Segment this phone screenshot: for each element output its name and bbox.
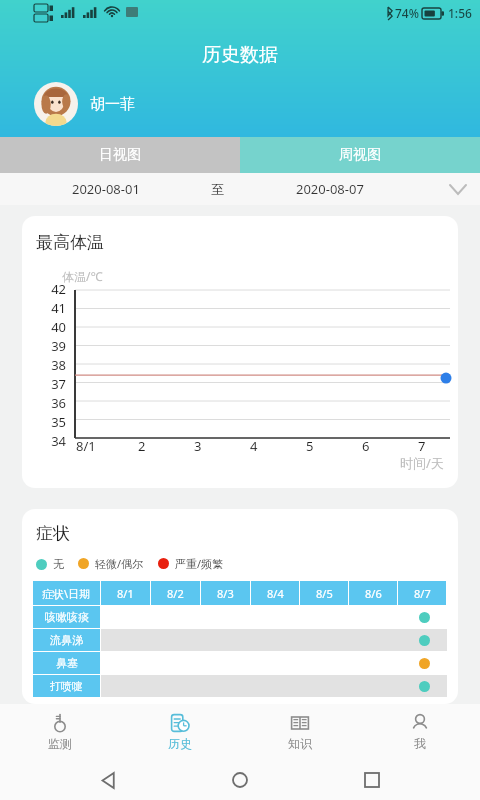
staticText: 6 bbox=[362, 437, 370, 455]
button[interactable]: Back bbox=[84, 760, 132, 800]
button[interactable]: 症状 bbox=[22, 509, 458, 704]
staticText: 40 bbox=[34, 318, 66, 336]
button[interactable]: User avatar bbox=[34, 82, 78, 126]
staticText: 37 bbox=[34, 375, 66, 393]
staticText: 无 bbox=[53, 557, 64, 571]
staticText: 1:56 bbox=[448, 5, 472, 21]
button[interactable]: 监测 bbox=[0, 704, 120, 760]
staticText: 症状 bbox=[36, 523, 70, 544]
staticText: 74% bbox=[395, 5, 419, 21]
button[interactable]: 最高体温 bbox=[22, 216, 458, 488]
button[interactable]: 周视图 bbox=[240, 137, 480, 173]
staticText: 至 bbox=[211, 181, 224, 197]
staticText: 35 bbox=[34, 413, 66, 431]
staticText: 轻微/偶尔 bbox=[95, 556, 144, 571]
staticText: 8/2 bbox=[167, 586, 184, 601]
staticText: 鼻塞 bbox=[56, 656, 78, 670]
staticText: 2020-08-01 bbox=[72, 180, 140, 198]
staticText: 严重/频繁 bbox=[175, 556, 224, 571]
staticText: 历史数据 bbox=[202, 43, 278, 67]
staticText: 胡一菲 bbox=[90, 95, 135, 114]
staticText: 2 bbox=[138, 437, 146, 455]
staticText: 41 bbox=[34, 299, 66, 317]
staticText: 日视图 bbox=[99, 146, 141, 164]
staticText: 体温/℃ bbox=[62, 268, 103, 284]
button[interactable]: 2020-08-01 bbox=[0, 173, 480, 205]
staticText: 5 bbox=[306, 437, 314, 455]
staticText: 2020-08-07 bbox=[296, 180, 364, 198]
staticText: 8/7 bbox=[414, 586, 431, 601]
staticText: 最高体温 bbox=[36, 232, 104, 253]
staticText: 3 bbox=[194, 437, 202, 455]
staticText: 症状\日期 bbox=[42, 586, 91, 601]
button[interactable]: Home bbox=[216, 760, 264, 800]
staticText: 历史 bbox=[168, 736, 192, 751]
staticText: 39 bbox=[34, 337, 66, 355]
staticText: 42 bbox=[34, 280, 66, 298]
staticText: 36 bbox=[34, 394, 66, 412]
staticText: 咳嗽咳痰 bbox=[45, 610, 89, 624]
staticText: 我 bbox=[414, 736, 426, 751]
staticText: 4 bbox=[250, 437, 258, 455]
staticText: 34 bbox=[34, 432, 66, 450]
staticText: 流鼻涕 bbox=[50, 633, 83, 647]
button[interactable]: 日视图 bbox=[0, 137, 240, 173]
staticText: 时间/天 bbox=[400, 454, 444, 472]
button[interactable]: 我 bbox=[360, 704, 480, 760]
staticText: 8/4 bbox=[267, 586, 284, 601]
button[interactable]: 知识 bbox=[240, 704, 360, 760]
button[interactable]: 历史 bbox=[120, 704, 240, 760]
staticText: 38 bbox=[34, 356, 66, 374]
staticText: 8/6 bbox=[365, 586, 382, 601]
staticText: 8/5 bbox=[316, 586, 333, 601]
staticText: 打喷嚏 bbox=[50, 679, 83, 693]
staticText: 周视图 bbox=[339, 146, 381, 164]
button[interactable]: Recent apps bbox=[348, 760, 396, 800]
staticText: 7 bbox=[418, 437, 426, 455]
staticText: 8/1 bbox=[117, 586, 134, 601]
staticText: 8/1 bbox=[76, 437, 96, 455]
staticText: 知识 bbox=[288, 736, 312, 751]
other: Expand date range bbox=[436, 173, 480, 205]
staticText: 监测 bbox=[48, 736, 72, 751]
staticText: 8/3 bbox=[217, 586, 234, 601]
